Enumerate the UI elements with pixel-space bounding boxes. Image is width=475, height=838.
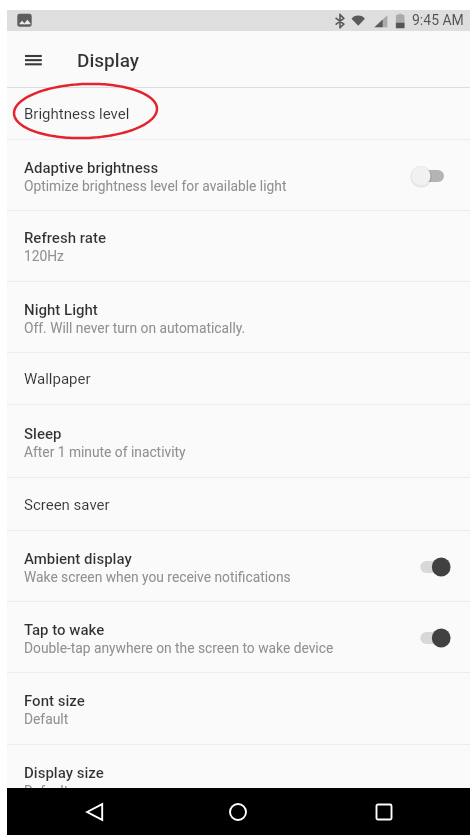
staticText: Screen saver	[24, 496, 110, 514]
button[interactable]: Open navigation drawer	[13, 44, 54, 77]
button[interactable]: Switch off	[412, 161, 458, 191]
staticText: Double-tap anywhere on the screen to wak…	[24, 640, 334, 656]
staticText: 9:45 AM	[412, 12, 464, 28]
staticText: Refresh rate	[24, 229, 106, 247]
button[interactable]: Switch on	[412, 552, 458, 582]
staticText: Default	[24, 711, 69, 727]
staticText: Adaptive brightness	[24, 159, 159, 177]
button[interactable]: Night Light	[7, 282, 470, 353]
button[interactable]: Home	[218, 788, 258, 835]
staticText: Sleep	[24, 425, 62, 443]
button[interactable]: Brightness level	[7, 88, 470, 140]
button[interactable]: Refresh rate	[7, 210, 470, 282]
button[interactable]: Sleep	[7, 406, 470, 478]
button[interactable]: Font size	[7, 673, 470, 745]
staticText: Tap to wake	[24, 621, 105, 639]
button[interactable]: Screen saver	[7, 478, 470, 531]
button[interactable]: Adaptive brightness	[7, 140, 470, 211]
staticText: Optimize brightness level for available …	[24, 178, 287, 194]
button[interactable]: Ambient display	[7, 531, 470, 602]
staticText: Night Light	[24, 301, 98, 319]
staticText: Default	[24, 783, 69, 799]
button[interactable]: Display size	[7, 745, 470, 817]
staticText: Display	[77, 49, 140, 71]
button[interactable]: Recent apps	[364, 788, 404, 835]
staticText: Font size	[24, 692, 85, 710]
staticText: Ambient display	[24, 550, 132, 568]
button[interactable]: Back	[75, 788, 115, 835]
button[interactable]: Switch on	[412, 623, 458, 653]
staticText: Display size	[24, 764, 104, 782]
staticText: 120Hz	[24, 248, 64, 264]
staticText: Wallpaper	[24, 370, 91, 388]
staticText: Off. Will never turn on automatically.	[24, 320, 246, 336]
staticText: Wake screen when you receive notificatio…	[24, 569, 291, 585]
staticText: After 1 minute of inactivity	[24, 444, 186, 460]
button[interactable]: Tap to wake	[7, 602, 470, 673]
button[interactable]: Wallpaper	[7, 353, 470, 405]
staticText: Brightness level	[24, 105, 130, 123]
